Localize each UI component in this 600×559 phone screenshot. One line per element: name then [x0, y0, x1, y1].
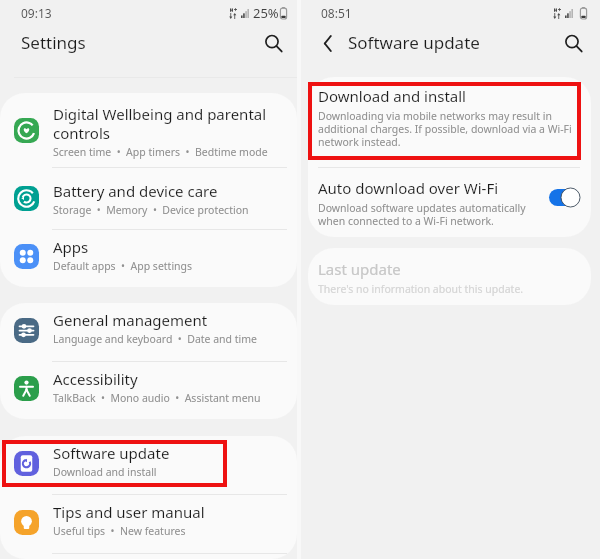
- staticText: Accessibility: [53, 369, 138, 389]
- staticText: Settings: [21, 31, 86, 54]
- staticText: 08:51: [321, 5, 352, 21]
- staticText: Default apps • App settings: [53, 259, 193, 273]
- button[interactable]: Last update: [308, 248, 591, 305]
- button[interactable]: Search: [560, 30, 586, 56]
- button[interactable]: General management: [0, 303, 297, 361]
- button[interactable]: Digital Wellbeing and parental controls: [0, 93, 297, 167]
- staticText: TalkBack • Mono audio • Assistant menu: [53, 391, 261, 405]
- staticText: 25%: [253, 4, 279, 22]
- staticText: Downloading via mobile networks may resu…: [318, 109, 577, 149]
- staticText: Auto download over Wi-Fi: [318, 178, 499, 198]
- button[interactable]: Apps: [0, 230, 297, 287]
- staticText: Download software updates automatically …: [318, 201, 545, 228]
- staticText: Download and install: [53, 465, 157, 479]
- staticText: Battery and device care: [53, 181, 218, 201]
- button[interactable]: Download and install: [308, 77, 591, 167]
- staticText: Storage • Memory • Device protection: [53, 203, 249, 217]
- button[interactable]: Accessibility: [0, 362, 297, 419]
- button[interactable]: Tips and user manual: [0, 495, 297, 553]
- staticText: 09:13: [21, 5, 52, 21]
- staticText: Software update: [348, 31, 480, 54]
- staticText: General management: [53, 310, 208, 330]
- button[interactable]: Back: [318, 33, 338, 53]
- staticText: Digital Wellbeing and parental controls: [53, 104, 267, 143]
- staticText: Tips and user manual: [53, 502, 205, 522]
- button[interactable]: Auto download over Wi-Fi toggle: [549, 188, 580, 207]
- staticText: Useful tips • New features: [53, 524, 186, 538]
- staticText: Download and install: [318, 86, 466, 106]
- staticText: Screen time • App timers • Bedtime mode: [53, 145, 268, 159]
- button[interactable]: Software update: [0, 436, 297, 494]
- staticText: Last update: [318, 259, 401, 279]
- button[interactable]: Auto download over Wi-Fi: [308, 168, 591, 237]
- staticText: Apps: [53, 237, 89, 257]
- staticText: Language and keyboard • Date and time: [53, 332, 258, 346]
- staticText: Software update: [53, 443, 170, 463]
- button[interactable]: Search: [260, 30, 286, 56]
- button[interactable]: Battery and device care: [0, 168, 297, 229]
- staticText: There's no information about this update…: [318, 282, 524, 296]
